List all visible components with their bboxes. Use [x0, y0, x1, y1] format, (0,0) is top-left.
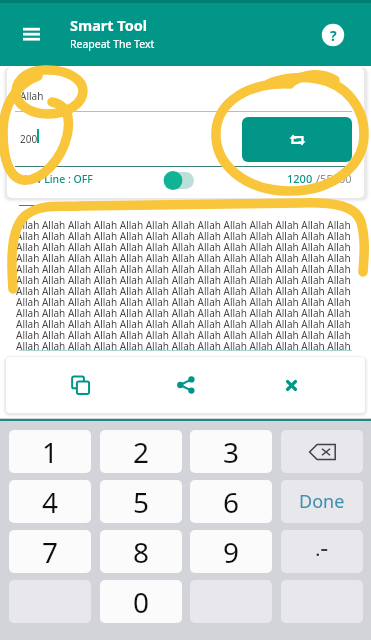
staticText: ? [330, 26, 337, 45]
staticText: Reapeat The Text [70, 37, 155, 51]
button[interactable]: Clear [269, 363, 313, 407]
button[interactable]: Repeat text [242, 117, 352, 162]
staticText: 7 [42, 533, 59, 571]
staticText: 5 [133, 483, 150, 521]
button[interactable]: Done [281, 480, 363, 523]
button[interactable]: Copy [58, 363, 102, 407]
button[interactable]: Backspace [281, 430, 363, 473]
button[interactable]: 4 [9, 480, 91, 523]
button[interactable]: 9 [190, 530, 272, 573]
button[interactable]: 8 [100, 530, 182, 573]
staticText: 4 [42, 483, 59, 521]
button[interactable]: 1 [9, 430, 91, 473]
staticText: 200 [20, 132, 38, 146]
staticText: 1200 [287, 171, 316, 186]
staticText: Done [299, 489, 345, 514]
button[interactable]: New line toggle [159, 168, 199, 192]
staticText: /55000 [316, 171, 352, 186]
staticText: Allah [20, 89, 44, 103]
staticText: 0 [133, 583, 150, 621]
staticText: Allah Allah Allah Allah Allah Allah Alla… [16, 218, 351, 351]
staticText: New Line : OFF [19, 172, 93, 186]
staticText: 9 [223, 533, 240, 571]
staticText: 6 [223, 483, 240, 521]
button[interactable]: 0 [100, 580, 182, 623]
staticText: 2 [133, 433, 150, 471]
button[interactable]: 2 [100, 430, 182, 473]
button[interactable]: Share [164, 363, 208, 407]
staticText: Smart Tool [70, 15, 148, 35]
button[interactable]: Dot and dash [281, 530, 363, 573]
button[interactable]: 7 [9, 530, 91, 573]
staticText: 3 [223, 433, 240, 471]
button[interactable]: Help [321, 23, 345, 47]
staticText: 1 [42, 433, 59, 471]
button[interactable]: Open navigation menu [16, 21, 47, 45]
staticText: 8 [133, 533, 150, 571]
button[interactable]: 6 [190, 480, 272, 523]
button[interactable]: 5 [100, 480, 182, 523]
button[interactable]: 3 [190, 430, 272, 473]
